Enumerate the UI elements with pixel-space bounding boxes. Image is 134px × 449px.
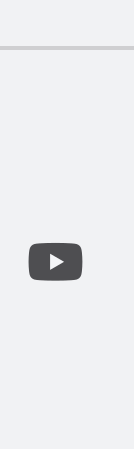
button[interactable]: Play video (29, 243, 82, 281)
